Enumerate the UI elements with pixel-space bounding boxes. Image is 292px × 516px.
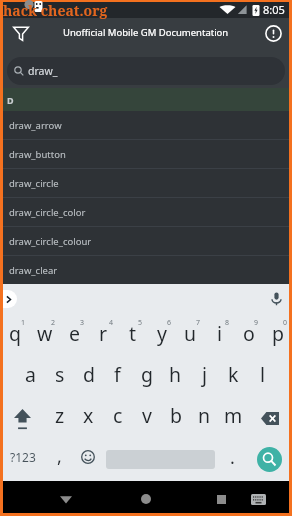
- staticText: .: [230, 445, 235, 470]
- button[interactable]: z: [45, 398, 74, 439]
- button[interactable]: u: [176, 316, 205, 357]
- button[interactable]: Recent apps: [205, 483, 237, 515]
- button[interactable]: n: [190, 398, 219, 439]
- staticText: p: [272, 320, 284, 347]
- button[interactable]: x: [74, 398, 103, 439]
- button[interactable]: .: [219, 439, 248, 480]
- staticText: draw_circle_color: [9, 206, 86, 219]
- button[interactable]: ?123: [0, 439, 44, 480]
- button[interactable]: l: [248, 357, 277, 398]
- button[interactable]: r: [89, 316, 118, 357]
- button[interactable]: m: [219, 398, 248, 439]
- button[interactable]: c: [103, 398, 132, 439]
- staticText: 4: [109, 318, 114, 328]
- button[interactable]: t: [118, 316, 147, 357]
- staticText: d: [83, 361, 95, 388]
- staticText: draw_: [28, 64, 58, 78]
- staticText: draw_arrow: [9, 119, 62, 132]
- button[interactable]: Home: [130, 483, 162, 515]
- staticText: u: [184, 320, 197, 347]
- staticText: z: [55, 402, 65, 429]
- button[interactable]: draw_circle_colour: [0, 227, 292, 256]
- staticText: f: [114, 361, 121, 388]
- staticText: ?123: [10, 449, 36, 465]
- button[interactable]: d: [74, 357, 103, 398]
- staticText: 8: [225, 318, 230, 328]
- button[interactable]: Filter: [8, 20, 34, 46]
- staticText: ,: [57, 444, 62, 469]
- button[interactable]: s: [45, 357, 74, 398]
- staticText: s: [55, 361, 65, 388]
- button[interactable]: draw_button: [0, 140, 292, 169]
- staticText: Unofficial Mobile GM Documentation: [63, 26, 229, 39]
- other: Keyboard active: [242, 483, 274, 515]
- staticText: k: [228, 361, 239, 388]
- button[interactable]: draw_: [7, 57, 285, 85]
- button[interactable]: Emoji: [73, 439, 102, 480]
- staticText: 8:05: [263, 2, 285, 17]
- button[interactable]: g: [132, 357, 161, 398]
- button[interactable]: f: [103, 357, 132, 398]
- button[interactable]: draw_circle_color: [0, 198, 292, 227]
- staticText: 3: [80, 318, 85, 328]
- button[interactable]: v: [132, 398, 161, 439]
- button[interactable]: draw_clear: [0, 256, 292, 284]
- button[interactable]: y: [147, 316, 176, 357]
- staticText: 1: [21, 318, 26, 328]
- button[interactable]: draw_circle: [0, 169, 292, 198]
- button[interactable]: Back: [50, 483, 82, 515]
- staticText: 9: [254, 318, 259, 328]
- button[interactable]: Backspace: [248, 398, 292, 439]
- button[interactable]: draw_arrow: [0, 111, 292, 140]
- staticText: draw_clear: [9, 264, 58, 277]
- staticText: j: [202, 361, 208, 388]
- button[interactable]: Shift: [0, 398, 45, 439]
- staticText: y: [157, 320, 167, 347]
- staticText: r: [99, 320, 108, 347]
- button[interactable]: Search: [257, 447, 282, 472]
- staticText: x: [83, 402, 94, 429]
- staticText: h: [169, 361, 182, 388]
- staticText: draw_button: [9, 148, 66, 161]
- button[interactable]: i: [205, 316, 234, 357]
- staticText: 6: [167, 318, 172, 328]
- button[interactable]: j: [190, 357, 219, 398]
- staticText: D: [7, 94, 14, 106]
- staticText: hack cheat.org: [3, 1, 108, 20]
- staticText: 7: [196, 318, 201, 328]
- button[interactable]: q: [0, 316, 30, 357]
- button[interactable]: w: [30, 316, 60, 357]
- button[interactable]: k: [219, 357, 248, 398]
- staticText: m: [224, 402, 243, 429]
- staticText: w: [37, 320, 53, 347]
- staticText: i: [217, 320, 223, 347]
- staticText: a: [25, 361, 36, 388]
- staticText: draw_circle: [9, 177, 59, 190]
- button[interactable]: a: [16, 357, 45, 398]
- staticText: e: [69, 320, 80, 347]
- button[interactable]: ,: [44, 439, 73, 480]
- staticText: draw_circle_colour: [9, 235, 92, 248]
- staticText: 5: [138, 318, 143, 328]
- button[interactable]: o: [234, 316, 263, 357]
- staticText: 2: [51, 318, 56, 328]
- staticText: 0: [283, 318, 288, 328]
- button[interactable]: Voice input: [267, 289, 285, 307]
- button[interactable]: Expand suggestions: [0, 290, 17, 308]
- button[interactable]: About: [260, 20, 286, 46]
- staticText: g: [141, 361, 153, 388]
- staticText: q: [9, 320, 21, 347]
- button[interactable]: p: [263, 316, 292, 357]
- staticText: c: [113, 402, 123, 429]
- button[interactable]: e: [60, 316, 89, 357]
- staticText: v: [142, 402, 152, 429]
- staticText: n: [198, 402, 211, 429]
- staticText: b: [170, 402, 182, 429]
- button[interactable]: b: [161, 398, 190, 439]
- staticText: l: [260, 361, 266, 388]
- staticText: o: [243, 320, 255, 347]
- staticText: t: [129, 320, 137, 347]
- button[interactable]: h: [161, 357, 190, 398]
